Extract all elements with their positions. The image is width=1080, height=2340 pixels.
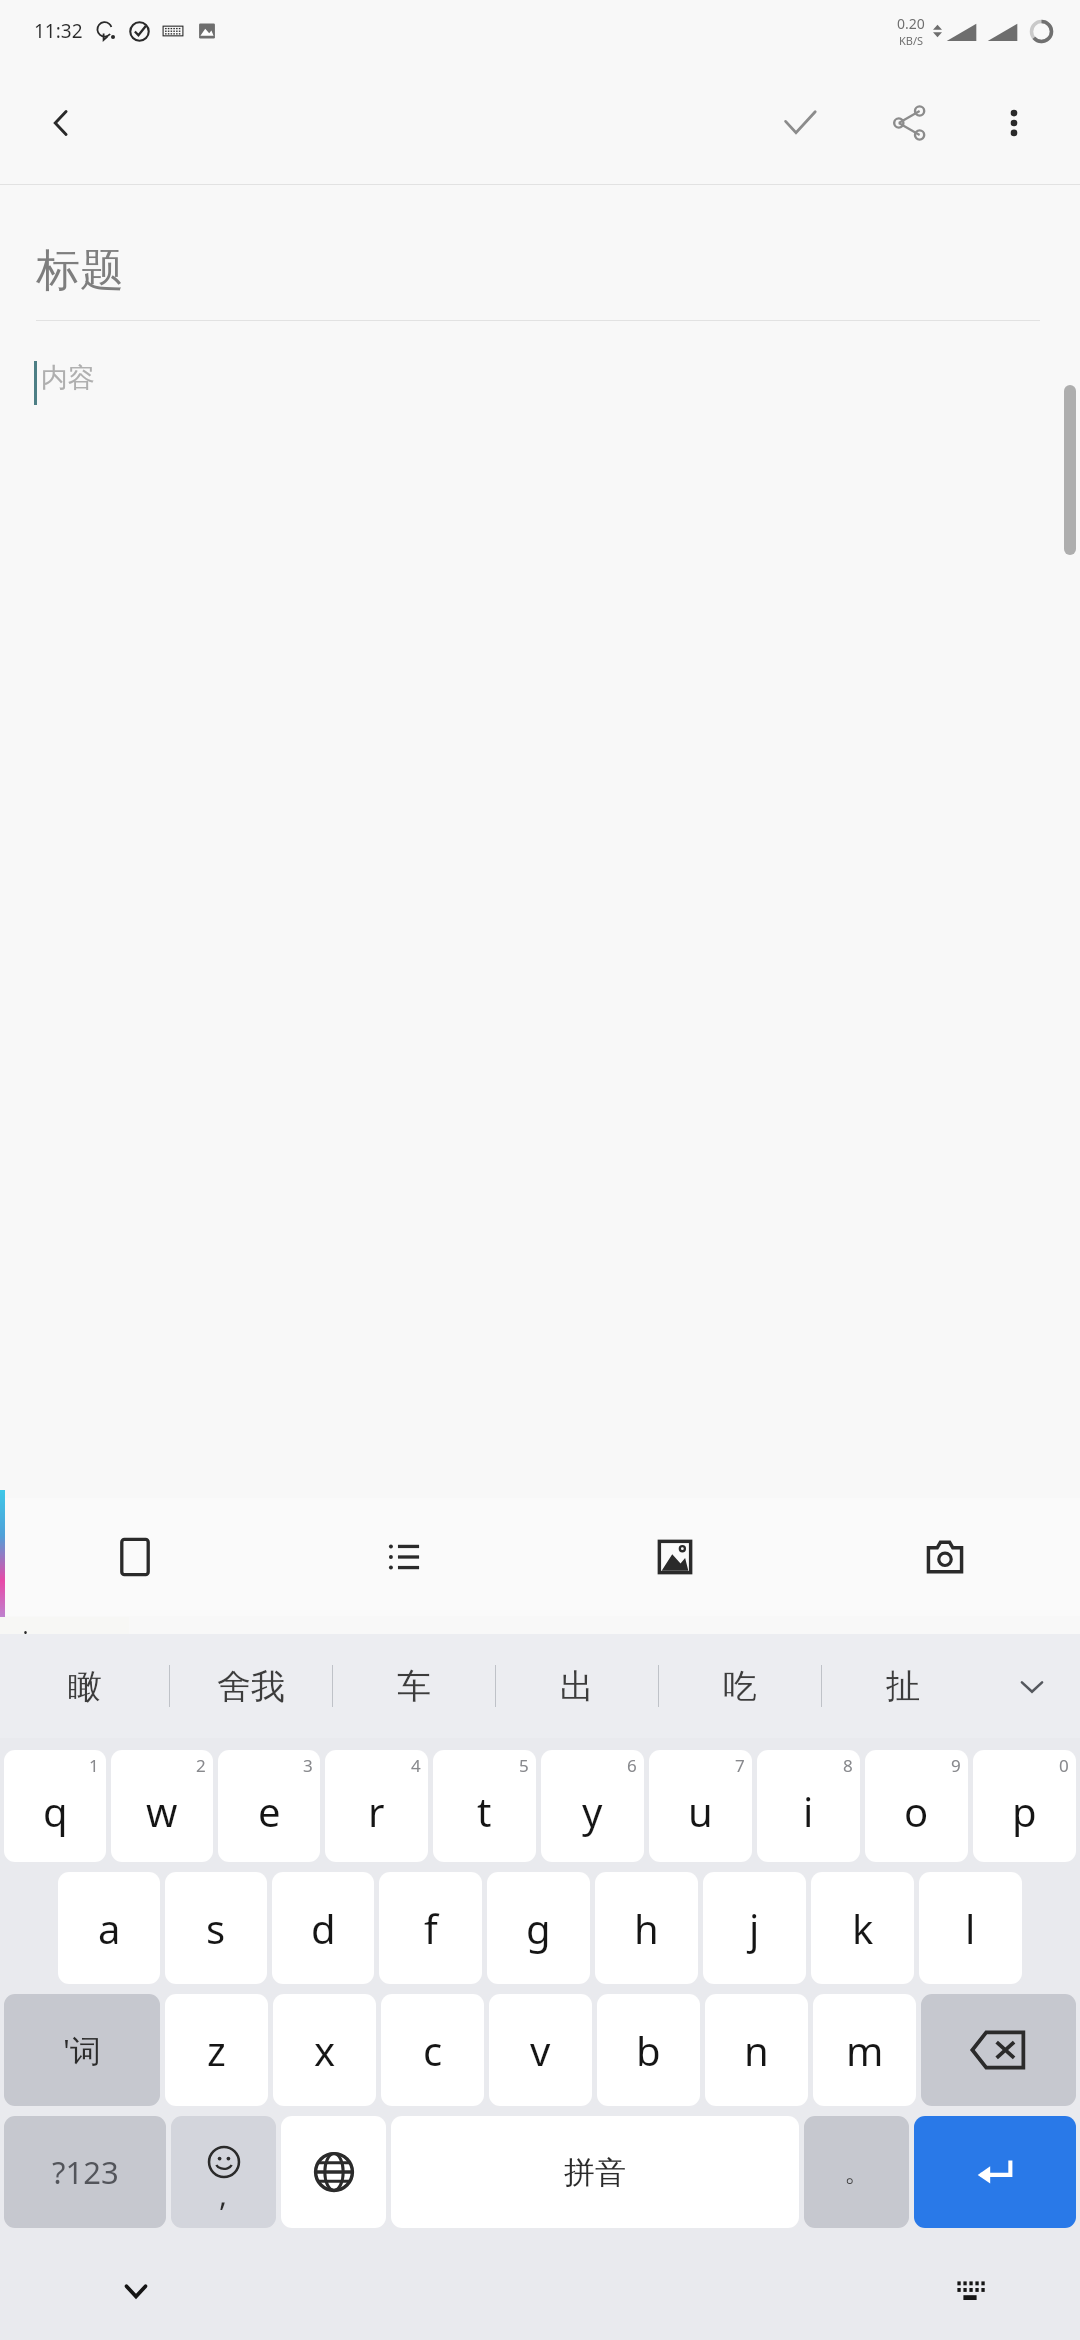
button[interactable]: 3	[218, 1750, 320, 1862]
button[interactable]: 内容	[34, 361, 1080, 405]
button[interactable]: k	[811, 1872, 914, 1984]
button[interactable]: Back	[26, 87, 98, 159]
button[interactable]: d	[272, 1872, 374, 1984]
button[interactable]: 7	[649, 1750, 752, 1862]
button[interactable]: Checkbox	[0, 1498, 270, 1616]
staticText: n	[744, 2023, 769, 2077]
staticText: b	[636, 2023, 661, 2077]
staticText: 9	[951, 1754, 961, 1777]
staticText: j	[749, 1901, 760, 1955]
staticText: 瞰	[68, 1665, 102, 1708]
button[interactable]: 拼音	[391, 2116, 799, 2228]
staticText: KB/S	[899, 33, 924, 48]
button[interactable]: l	[919, 1872, 1022, 1984]
staticText: e	[258, 1784, 281, 1838]
staticText: 6	[627, 1754, 637, 1777]
button[interactable]: Image	[540, 1498, 810, 1616]
button[interactable]: Backspace	[921, 1994, 1076, 2106]
staticText: 车	[397, 1665, 431, 1708]
staticText: ?123	[52, 2151, 119, 2193]
button[interactable]: 6	[541, 1750, 644, 1862]
staticText: z	[207, 2023, 226, 2077]
staticText: 8	[843, 1754, 853, 1777]
staticText: 内容	[41, 361, 95, 395]
staticText: 7	[735, 1754, 745, 1777]
staticText: x	[314, 2023, 336, 2077]
staticText: 0.20	[897, 14, 925, 33]
staticText: 出	[560, 1665, 594, 1708]
button[interactable]: h	[595, 1872, 698, 1984]
button[interactable]: Hide keyboard	[100, 2255, 172, 2327]
button[interactable]: 。	[804, 2116, 909, 2228]
button[interactable]: c	[381, 1994, 484, 2106]
button[interactable]: x	[273, 1994, 376, 2106]
button[interactable]: v	[489, 1994, 592, 2106]
staticText: w	[146, 1784, 178, 1838]
button[interactable]: 扯	[822, 1634, 984, 1738]
button[interactable]: 5	[433, 1750, 536, 1862]
staticText: 标题	[36, 243, 124, 298]
staticText: c	[423, 2023, 443, 2077]
button[interactable]: 瞰	[0, 1634, 169, 1738]
button[interactable]: More options	[974, 83, 1054, 163]
staticText: o	[904, 1784, 929, 1838]
button[interactable]: Emoji and comma	[171, 2116, 276, 2228]
staticText: 2	[196, 1754, 206, 1777]
button[interactable]: 2	[111, 1750, 213, 1862]
staticText: d	[311, 1901, 336, 1955]
staticText: 舍我	[217, 1665, 285, 1708]
button[interactable]: Enter	[914, 2116, 1076, 2228]
button[interactable]: g	[487, 1872, 590, 1984]
staticText: m	[846, 2023, 884, 2077]
staticText: 吃	[723, 1665, 757, 1708]
staticText: u	[688, 1784, 713, 1838]
button[interactable]: Switch language	[281, 2116, 386, 2228]
button[interactable]: 车	[333, 1634, 495, 1738]
staticText: q	[43, 1784, 68, 1838]
staticText: ,	[219, 2174, 228, 2215]
button[interactable]: Camera	[810, 1498, 1080, 1616]
button[interactable]: List	[270, 1498, 540, 1616]
staticText: f	[424, 1901, 438, 1955]
button[interactable]: a	[58, 1872, 160, 1984]
button[interactable]: 标题	[36, 243, 1080, 298]
button[interactable]: m	[813, 1994, 916, 2106]
staticText: 拼音	[564, 2153, 626, 2192]
staticText: 11:32	[34, 18, 83, 44]
button[interactable]: Save	[758, 81, 842, 165]
staticText: k	[852, 1901, 874, 1955]
button[interactable]: '词	[4, 1994, 160, 2106]
staticText: g	[526, 1901, 551, 1955]
staticText: p	[1012, 1784, 1037, 1838]
staticText: 。	[844, 2156, 870, 2189]
staticText: 0	[1059, 1754, 1069, 1777]
button[interactable]: 8	[757, 1750, 860, 1862]
button[interactable]: s	[165, 1872, 267, 1984]
button[interactable]: Switch keyboard	[934, 2255, 1006, 2327]
staticText: s	[206, 1901, 226, 1955]
button[interactable]: 1	[4, 1750, 106, 1862]
staticText: i e o w	[22, 1623, 103, 1660]
button[interactable]: z	[165, 1994, 268, 2106]
button[interactable]: f	[379, 1872, 482, 1984]
button[interactable]: 4	[325, 1750, 428, 1862]
button[interactable]: j	[703, 1872, 806, 1984]
staticText: a	[98, 1901, 121, 1955]
staticText: '词	[63, 2029, 101, 2071]
staticText: r	[368, 1784, 385, 1838]
staticText: v	[530, 2023, 551, 2077]
button[interactable]: 出	[496, 1634, 658, 1738]
button[interactable]: 吃	[659, 1634, 821, 1738]
staticText: 1	[89, 1754, 99, 1777]
button[interactable]: Expand candidates	[984, 1634, 1080, 1738]
button[interactable]: 9	[865, 1750, 968, 1862]
staticText: 3	[303, 1754, 313, 1777]
button[interactable]: 0	[973, 1750, 1076, 1862]
button[interactable]: Share	[868, 81, 952, 165]
staticText: 4	[411, 1754, 421, 1777]
staticText: l	[965, 1901, 976, 1955]
button[interactable]: n	[705, 1994, 808, 2106]
button[interactable]: 舍我	[170, 1634, 332, 1738]
button[interactable]: b	[597, 1994, 700, 2106]
button[interactable]: ?123	[4, 2116, 166, 2228]
